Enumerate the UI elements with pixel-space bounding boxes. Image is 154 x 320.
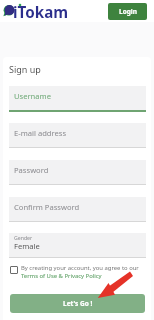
- staticText: Terms of Use & Privacy Policy: [21, 272, 102, 280]
- staticText: Password: [14, 165, 49, 175]
- button[interactable]: Password: [9, 160, 146, 185]
- staticText: Gender: [14, 234, 33, 241]
- button[interactable]: E-mail address: [9, 123, 146, 148]
- staticText: Login: [119, 7, 137, 16]
- button[interactable]: Login: [108, 3, 147, 20]
- button[interactable]: Confirm Password: [9, 197, 146, 222]
- other: iTokam logo: [0, 1, 19, 20]
- staticText: By creating your account, you agree to o…: [21, 264, 139, 272]
- other: Arrow pointing to Let's Go button: [0, 0, 154, 320]
- staticText: Let's Go !: [63, 299, 93, 308]
- staticText: Sign up: [9, 63, 41, 75]
- button[interactable]: Gender: [9, 233, 146, 258]
- staticText: Female: [14, 241, 40, 251]
- staticText: E-mail address: [14, 128, 67, 138]
- button[interactable]: Username: [9, 86, 146, 112]
- button[interactable]: Let's Go !: [10, 294, 145, 313]
- staticText: Confirm Password: [14, 202, 80, 212]
- staticText: iTokam: [13, 2, 69, 23]
- button[interactable]: By creating your account, you agree to o…: [10, 264, 147, 280]
- staticText: Username: [14, 91, 51, 101]
